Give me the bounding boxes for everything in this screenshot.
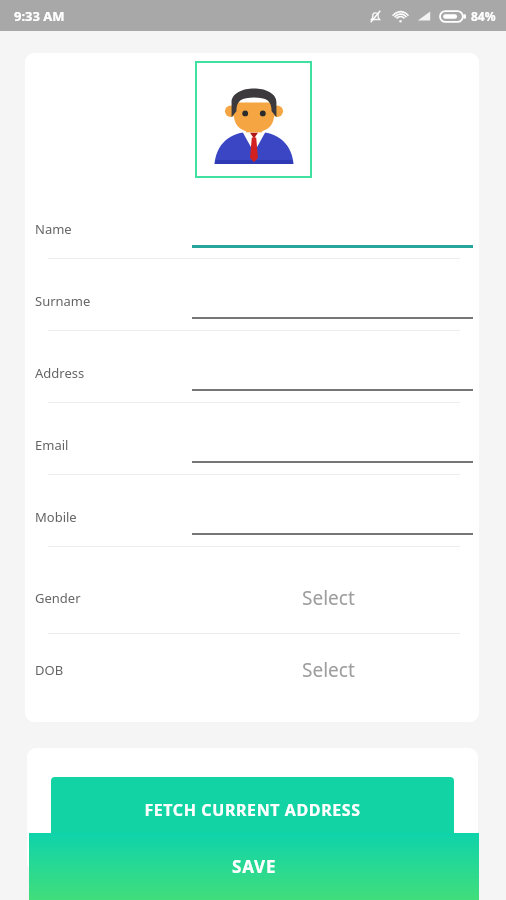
staticText: FETCH CURRENT ADDRESS: [144, 799, 361, 821]
staticText: DOB: [35, 661, 64, 679]
button[interactable]: Profile photo: [195, 61, 312, 178]
button[interactable]: Surname: [25, 274, 479, 346]
staticText: Mobile: [35, 508, 77, 526]
staticText: Address: [35, 364, 85, 382]
button[interactable]: Mobile: [25, 490, 479, 562]
staticText: Gender: [35, 589, 81, 607]
button[interactable]: Address: [25, 346, 479, 418]
staticText: SAVE: [232, 855, 277, 878]
button[interactable]: Gender: [25, 562, 479, 634]
button[interactable]: SAVE: [29, 833, 479, 900]
staticText: Name: [35, 220, 72, 238]
staticText: 84%: [471, 8, 496, 24]
staticText: Select: [302, 585, 355, 611]
button[interactable]: DOB: [25, 634, 479, 706]
staticText: Email: [35, 436, 69, 454]
staticText: Select: [302, 657, 355, 683]
button[interactable]: Email: [25, 418, 479, 490]
button[interactable]: FETCH CURRENT ADDRESS: [51, 777, 454, 843]
button[interactable]: Name: [25, 202, 479, 274]
staticText: 9:33 AM: [14, 7, 65, 25]
staticText: Surname: [35, 292, 91, 310]
